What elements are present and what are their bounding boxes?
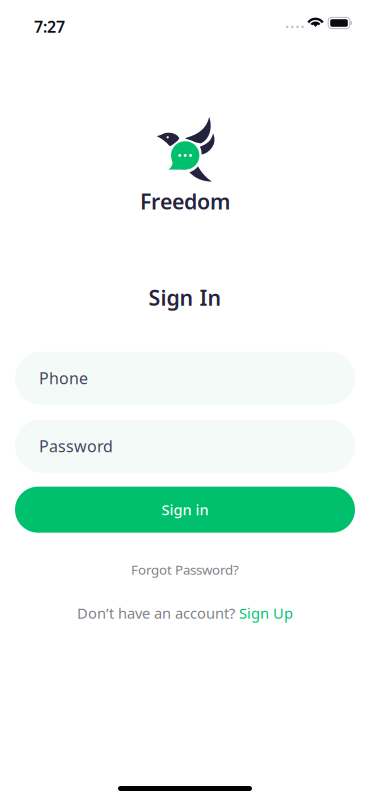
- staticText: Sign in: [161, 500, 208, 519]
- staticText: Freedom: [140, 187, 230, 215]
- button[interactable]: Phone: [15, 352, 355, 405]
- button[interactable]: Sign Up: [239, 603, 293, 623]
- staticText: Sign In: [148, 283, 221, 312]
- button[interactable]: Password: [15, 420, 355, 473]
- button[interactable]: Sign in: [15, 487, 355, 533]
- staticText: Phone: [39, 367, 88, 389]
- button[interactable]: Forgot Password?: [131, 561, 239, 578]
- staticText: Forgot Password?: [131, 561, 239, 578]
- staticText: Sign Up: [239, 603, 293, 623]
- staticText: Password: [39, 435, 113, 457]
- staticText: Don’t have an account?: [77, 603, 235, 623]
- staticText: 7:27: [34, 16, 65, 37]
